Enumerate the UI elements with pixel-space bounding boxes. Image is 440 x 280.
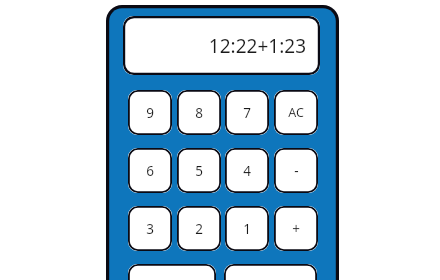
button[interactable]: Display (123, 16, 320, 75)
staticText: 2 (195, 220, 203, 238)
button[interactable]: + (274, 206, 318, 251)
staticText: 7 (243, 104, 251, 122)
button[interactable]: AC (274, 90, 318, 135)
staticText: 1 (243, 220, 251, 238)
staticText: 4 (243, 162, 251, 180)
button[interactable]: 3 (128, 206, 172, 251)
staticText: 3 (146, 220, 154, 238)
button[interactable]: 7 (225, 90, 269, 135)
button[interactable]: 8 (177, 90, 221, 135)
button[interactable]: 1 (225, 206, 269, 251)
staticText: AC (288, 104, 304, 121)
staticText: 5 (195, 162, 203, 180)
button[interactable]: 2 (177, 206, 221, 251)
button[interactable] (224, 264, 317, 280)
staticText: - (294, 162, 299, 180)
staticText: 6 (146, 162, 154, 180)
staticText: 9 (146, 104, 154, 122)
staticText: + (292, 220, 300, 238)
button[interactable]: 9 (128, 90, 172, 135)
button[interactable]: 5 (177, 148, 221, 193)
button[interactable]: 6 (128, 148, 172, 193)
button[interactable]: - (274, 148, 318, 193)
staticText: 8 (195, 104, 203, 122)
staticText: 12:22+1:23 (208, 33, 306, 59)
button[interactable]: 4 (225, 148, 269, 193)
button[interactable] (128, 264, 216, 280)
